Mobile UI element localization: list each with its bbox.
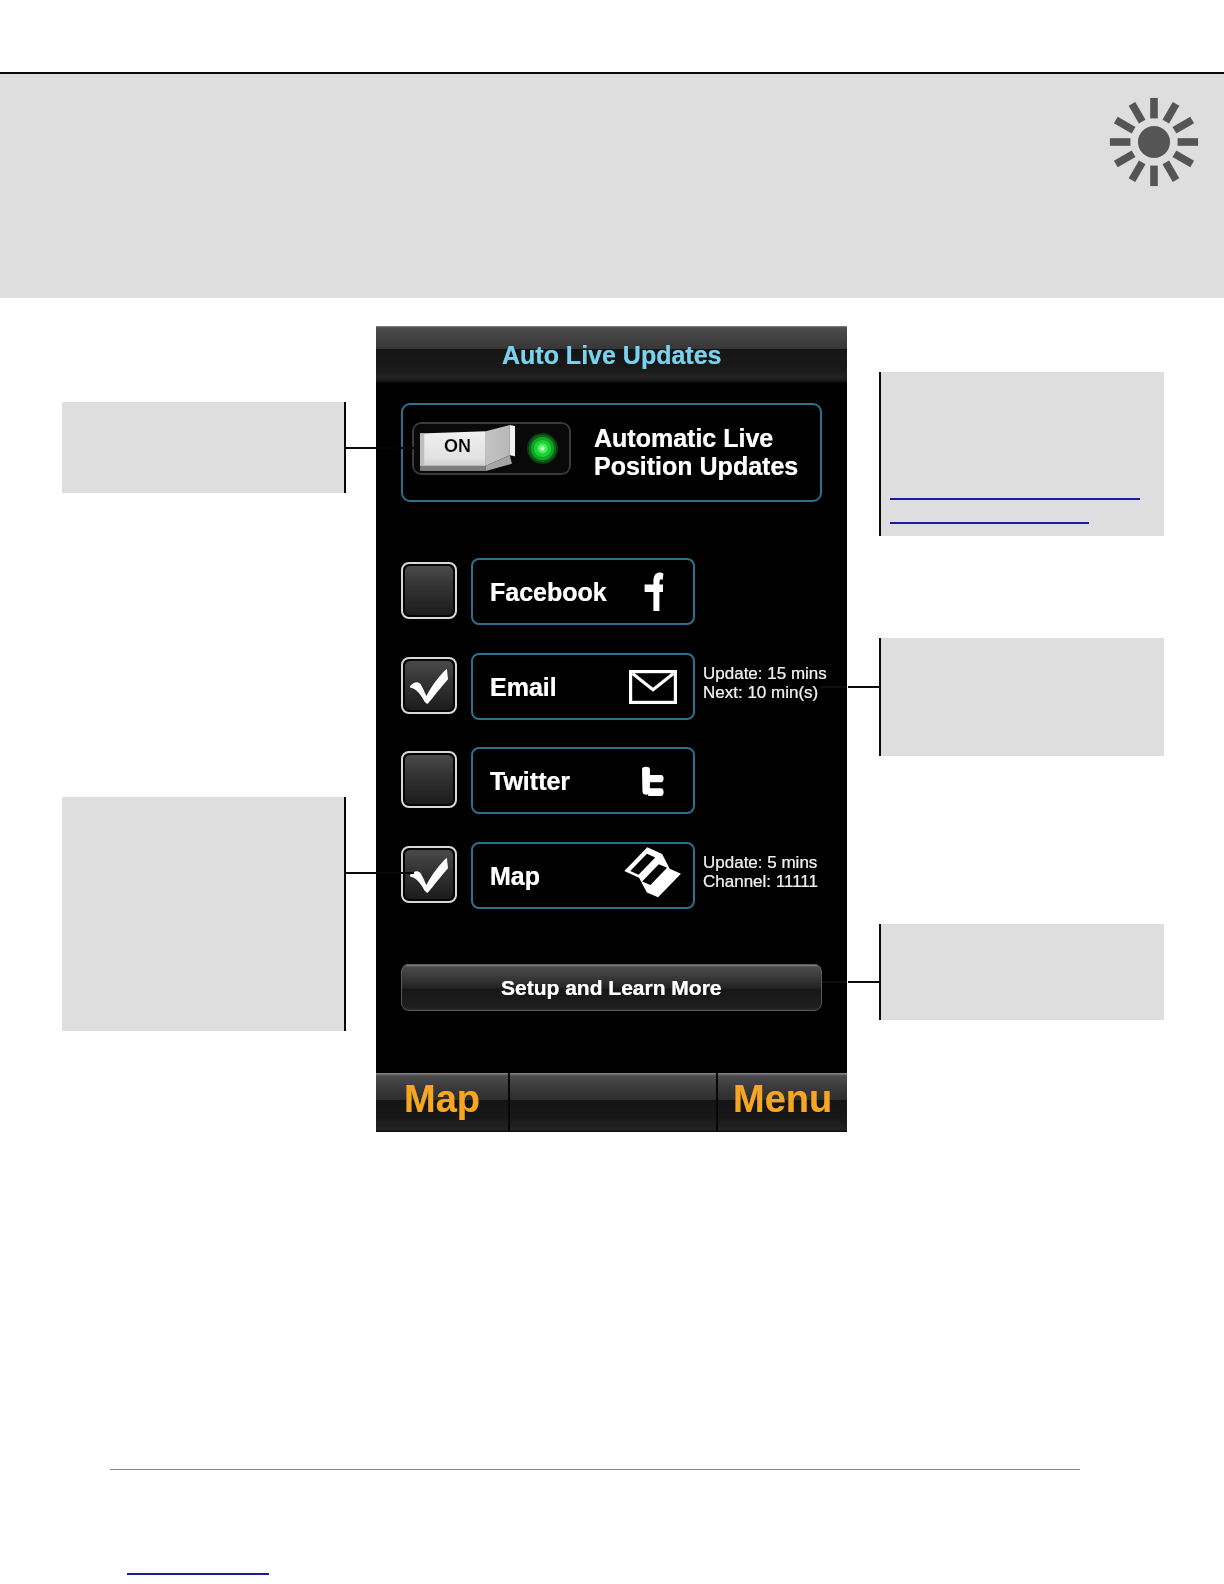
button[interactable]: Email <box>471 653 695 720</box>
button[interactable]: Setup and Learn More <box>401 964 822 1011</box>
staticText: Map <box>490 862 540 890</box>
staticText: ON <box>444 436 471 456</box>
staticText: Map <box>404 1078 480 1120</box>
staticText: Facebook <box>490 578 607 606</box>
button[interactable]: Map <box>376 1073 508 1132</box>
staticText: Auto Live Updates <box>502 341 722 369</box>
staticText: Channel: 11111 <box>703 872 818 891</box>
button[interactable] <box>510 1073 716 1132</box>
staticText: Update: 5 mins <box>703 853 818 872</box>
staticText: Twitter <box>490 767 571 795</box>
button[interactable]: Map checkbox <box>405 850 453 899</box>
staticText: Menu <box>733 1078 833 1120</box>
button[interactable]: Facebook <box>471 558 695 625</box>
button[interactable]: Map <box>471 842 695 909</box>
button[interactable]: Toggle automatic live position updates <box>412 422 571 475</box>
button[interactable]: Toggle automatic live position updates <box>401 403 822 502</box>
staticText: Next: 10 min(s) <box>703 683 819 702</box>
staticText: Position Updates <box>594 452 799 480</box>
staticText: Update: 15 mins <box>703 664 827 683</box>
button[interactable]: Email checkbox <box>405 661 453 710</box>
button[interactable]: Twitter <box>471 747 695 814</box>
staticText: Email <box>490 673 557 701</box>
staticText: Setup and Learn More <box>501 976 722 999</box>
staticText: Automatic Live <box>594 424 774 452</box>
button[interactable]: Menu <box>718 1073 847 1132</box>
button[interactable]: Facebook checkbox <box>405 566 453 615</box>
button[interactable]: Twitter checkbox <box>405 755 453 804</box>
